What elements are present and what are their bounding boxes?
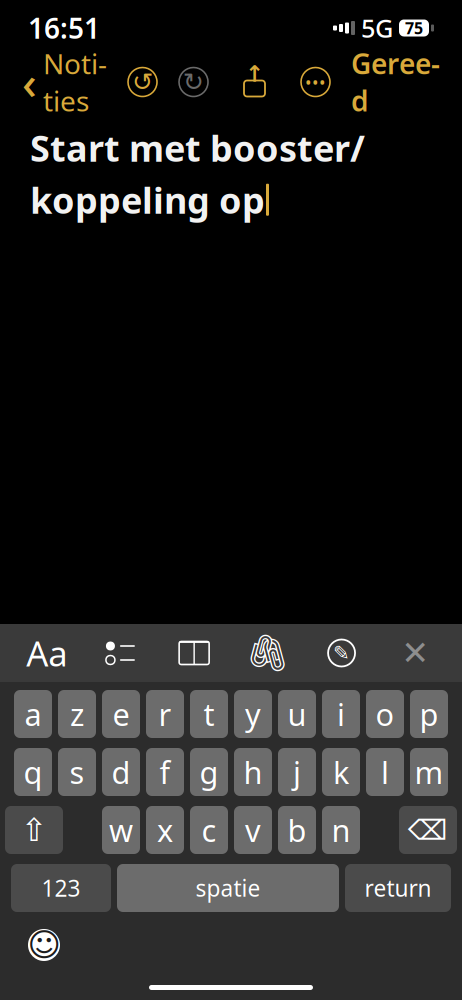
staticText: j <box>293 752 301 792</box>
button[interactable]: return <box>345 864 451 912</box>
staticText: ‹ <box>22 52 37 112</box>
button[interactable]: j <box>278 748 316 796</box>
button[interactable]: k <box>322 748 360 796</box>
staticText: c <box>201 810 216 850</box>
button[interactable]: More <box>290 58 341 106</box>
staticText: s <box>69 752 84 792</box>
staticText: q <box>23 752 42 792</box>
staticText: l <box>381 752 389 792</box>
staticText: ☺ <box>27 927 60 963</box>
button[interactable]: Gereed <box>341 58 450 106</box>
staticText: ⇧ <box>20 812 47 848</box>
button[interactable]: g <box>190 748 228 796</box>
button[interactable]: Emoji <box>18 922 70 968</box>
staticText: spatie <box>195 873 260 903</box>
button[interactable]: x <box>146 806 184 854</box>
button[interactable]: Delete <box>399 806 457 854</box>
staticText: ✎ <box>333 642 350 664</box>
button[interactable]: t <box>190 690 228 738</box>
staticText: ••• <box>305 70 326 93</box>
staticText: ↺ <box>132 68 153 96</box>
staticText: o <box>375 694 394 734</box>
staticText: 🖇 <box>245 632 291 673</box>
button[interactable]: i <box>322 690 360 738</box>
staticText: 5G <box>361 11 393 45</box>
staticText: r <box>158 694 171 734</box>
button[interactable]: m <box>410 748 448 796</box>
button[interactable]: Format <box>20 627 74 679</box>
button[interactable]: b <box>278 806 316 854</box>
button[interactable]: u <box>278 690 316 738</box>
button[interactable]: r <box>146 690 184 738</box>
staticText: Aa <box>26 630 67 676</box>
button[interactable]: Attach <box>241 627 295 679</box>
staticText: k <box>333 752 349 792</box>
staticText: v <box>245 810 261 850</box>
button[interactable]: Redo <box>168 58 219 106</box>
staticText: t <box>203 694 214 734</box>
button[interactable]: Close <box>388 627 442 679</box>
staticText: b <box>287 810 306 850</box>
button[interactable]: spatie <box>117 864 339 912</box>
staticText: e <box>112 694 129 734</box>
button[interactable]: p <box>410 690 448 738</box>
staticText: h <box>243 752 262 792</box>
staticText: w <box>109 810 133 850</box>
button[interactable]: f <box>146 748 184 796</box>
button[interactable]: y <box>234 690 272 738</box>
staticText: return <box>364 873 431 903</box>
staticText: x <box>157 810 173 850</box>
staticText: ↻ <box>183 68 204 96</box>
staticText: z <box>70 694 84 734</box>
button[interactable]: ‹ <box>12 58 117 106</box>
staticText: g <box>199 752 218 792</box>
button[interactable]: e <box>102 690 140 738</box>
staticText: m <box>414 752 443 792</box>
staticText: y <box>245 694 261 734</box>
staticText: Gereed <box>351 45 440 119</box>
button[interactable]: Share <box>229 58 279 106</box>
staticText: p <box>419 694 438 734</box>
staticText: ⌫ <box>408 814 448 846</box>
staticText: d <box>111 752 130 792</box>
staticText: n <box>331 810 350 850</box>
button[interactable]: n <box>322 806 360 854</box>
button[interactable]: z <box>58 690 96 738</box>
staticText: ↑ <box>245 61 264 87</box>
button[interactable]: h <box>234 748 272 796</box>
staticText: a <box>24 694 41 734</box>
staticText: ✕ <box>401 634 429 672</box>
button[interactable]: Checklist <box>93 627 147 679</box>
button[interactable]: v <box>234 806 272 854</box>
button[interactable]: Markup <box>315 627 369 679</box>
button[interactable]: 123 <box>11 864 111 912</box>
staticText: f <box>159 752 170 792</box>
button[interactable]: Table <box>167 627 221 679</box>
button[interactable]: Undo <box>117 58 168 106</box>
staticText: u <box>287 694 306 734</box>
button[interactable]: o <box>366 690 404 738</box>
staticText: Start met booster/ <box>30 124 365 172</box>
staticText: 123 <box>41 873 80 903</box>
button[interactable]: w <box>102 806 140 854</box>
staticText: 16:51 <box>28 9 100 47</box>
button[interactable]: q <box>14 748 52 796</box>
button[interactable]: c <box>190 806 228 854</box>
button[interactable]: Shift <box>5 806 63 854</box>
staticText: Notities <box>43 45 107 119</box>
button[interactable]: s <box>58 748 96 796</box>
button[interactable]: a <box>14 690 52 738</box>
staticText: 75 <box>405 17 423 39</box>
button[interactable]: d <box>102 748 140 796</box>
button[interactable]: l <box>366 748 404 796</box>
staticText: koppeling op <box>30 176 265 224</box>
staticText: i <box>337 694 345 734</box>
